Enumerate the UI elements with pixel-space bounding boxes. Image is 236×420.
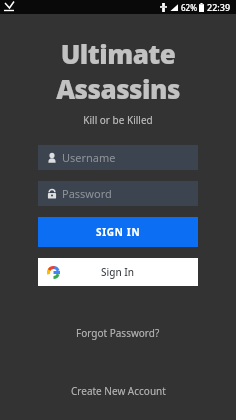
button[interactable]: Sign In xyxy=(38,258,198,286)
staticText: SIGN IN xyxy=(96,225,141,239)
button[interactable]: Password xyxy=(38,181,198,206)
staticText: Create New Account xyxy=(71,384,166,398)
staticText: Ultimate Assassins xyxy=(0,36,236,106)
button[interactable]: Forgot Password? xyxy=(0,324,236,342)
staticText: 22:39 xyxy=(207,1,231,13)
other: Username xyxy=(46,152,58,164)
button[interactable]: Username xyxy=(38,145,198,170)
staticText: Forgot Password? xyxy=(76,326,160,340)
staticText: 62% xyxy=(181,2,197,13)
staticText: Password xyxy=(62,186,112,201)
staticText: Sign In xyxy=(101,265,135,279)
button[interactable]: SIGN IN xyxy=(38,217,198,247)
button[interactable]: Create New Account xyxy=(0,374,236,408)
other: Password xyxy=(46,188,58,200)
staticText: Kill or be Killed xyxy=(0,113,236,127)
staticText: Username xyxy=(62,150,116,165)
